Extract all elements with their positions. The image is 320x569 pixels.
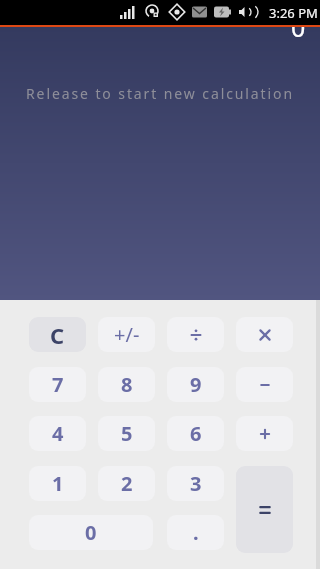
button[interactable] <box>236 367 293 402</box>
staticText: 1 <box>52 470 64 497</box>
staticText: 3 <box>190 470 202 497</box>
button[interactable]: 6 <box>167 416 224 451</box>
button[interactable]: 4 <box>29 416 86 451</box>
button[interactable]: 9 <box>167 367 224 402</box>
button[interactable]: +/- <box>98 317 155 352</box>
staticText: . <box>193 519 199 546</box>
staticText: 4 <box>52 420 64 447</box>
staticText: 3:26 PM <box>269 4 318 22</box>
staticText: 7 <box>52 371 64 398</box>
staticText: 0 <box>291 27 306 44</box>
button[interactable] <box>167 317 224 352</box>
staticText: 2 <box>121 470 133 497</box>
button[interactable]: 5 <box>98 416 155 451</box>
button[interactable] <box>236 416 293 451</box>
staticText: C <box>50 320 65 350</box>
staticText: 9 <box>190 371 202 398</box>
button[interactable] <box>236 317 293 352</box>
button[interactable]: 1 <box>29 466 86 501</box>
button[interactable]: 8 <box>98 367 155 402</box>
button[interactable]: C <box>29 317 86 352</box>
staticText: 6 <box>190 420 202 447</box>
button[interactable]: 2 <box>98 466 155 501</box>
staticText: 5 <box>121 420 133 447</box>
button[interactable]: 0 <box>29 515 153 550</box>
staticText: 8 <box>121 371 133 398</box>
button[interactable]: . <box>167 515 224 550</box>
button[interactable]: 3 <box>167 466 224 501</box>
staticText: +/- <box>114 321 140 348</box>
staticText: 0 <box>85 519 97 546</box>
staticText: Release to start new calculation <box>26 84 294 103</box>
button[interactable] <box>236 466 293 553</box>
button[interactable]: 7 <box>29 367 86 402</box>
